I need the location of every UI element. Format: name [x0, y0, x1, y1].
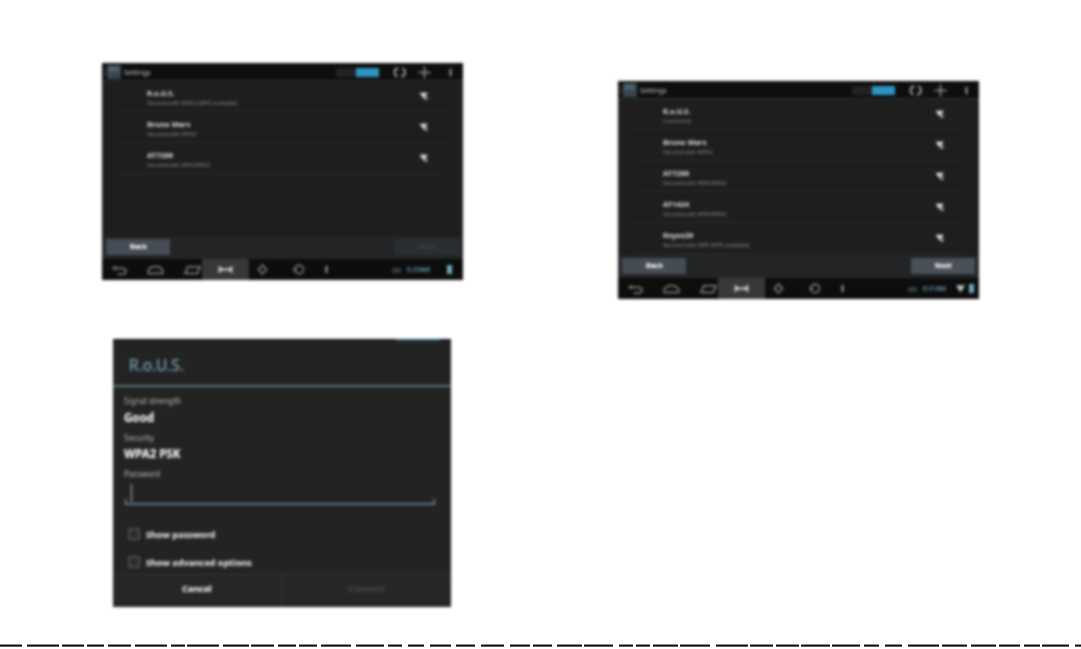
button[interactable]: Wi-Fi on/off — [336, 68, 379, 77]
button[interactable]: R.o.U.S. — [618, 99, 979, 130]
staticText: R.o.U.S. — [663, 106, 691, 116]
button[interactable]: Back — [111, 261, 128, 278]
button[interactable]: AT1424 — [618, 192, 979, 223]
button[interactable]: Back — [106, 239, 170, 255]
button[interactable]: More — [838, 282, 847, 295]
staticText: Back — [130, 242, 147, 252]
staticText: Settings — [124, 68, 151, 78]
staticText: Secured with WPA2 (WPS available) — [147, 99, 238, 106]
button[interactable]: Screenshot — [718, 278, 765, 299]
staticText: Show advanced options — [146, 556, 252, 568]
staticText: Back — [646, 261, 663, 271]
button[interactable]: Add network — [417, 65, 432, 80]
button[interactable]: Screenshot — [202, 259, 249, 280]
staticText: Secured with WPA2 — [147, 130, 197, 137]
button[interactable]: More options — [962, 84, 971, 97]
button[interactable]: Show advanced options — [113, 551, 451, 573]
button[interactable]: AT7286 — [102, 143, 463, 174]
button[interactable]: More options — [446, 66, 455, 79]
button[interactable]: Volume — [290, 261, 307, 278]
button[interactable]: Wi-Fi on/off — [852, 86, 895, 95]
staticText: Bruno Mars — [147, 119, 191, 129]
button[interactable]: Volume — [806, 280, 823, 297]
button[interactable]: Cancel — [113, 575, 281, 607]
button[interactable]: More — [322, 263, 331, 276]
button[interactable]: Brightness — [770, 280, 787, 297]
staticText: Password — [124, 468, 161, 479]
button[interactable]: Show password — [113, 523, 451, 545]
button[interactable]: Next — [911, 258, 975, 274]
button[interactable]: Bruno Mars — [102, 112, 463, 143]
button[interactable]: Scan — [909, 84, 922, 97]
staticText: Secured with WPA/WPA2 — [663, 210, 727, 217]
button[interactable]: Home — [663, 280, 680, 297]
staticText: Secured with WPA2 — [663, 148, 713, 155]
button[interactable]: R.o.U.S. — [102, 81, 463, 112]
staticText: 6:25AM — [407, 265, 430, 274]
staticText: Next — [935, 261, 952, 271]
staticText: Security — [124, 432, 155, 443]
staticText: Show password — [146, 528, 216, 540]
button[interactable]: Reyes26 — [618, 223, 979, 254]
button[interactable]: Home — [147, 261, 164, 278]
staticText: AT1424 — [663, 199, 690, 209]
staticText: Signal strength — [124, 395, 182, 406]
staticText: AT7286 — [663, 168, 690, 178]
staticText: R.o.U.S. — [147, 88, 175, 98]
button[interactable]: Connect — [282, 575, 451, 607]
button[interactable]: Add network — [933, 83, 948, 98]
staticText: Bruno Mars — [663, 137, 707, 147]
staticText: Cancel — [182, 582, 212, 594]
staticText: Reyes26 — [663, 230, 694, 240]
button[interactable]: Back — [622, 258, 686, 274]
staticText: Connected — [663, 117, 691, 124]
button[interactable]: Recent apps — [184, 261, 201, 278]
staticText: Settings — [640, 86, 667, 96]
staticText: 6:31AM — [923, 284, 946, 293]
staticText: Secured with WPA/WPA2 — [147, 161, 211, 168]
staticText: AT7286 — [147, 150, 174, 160]
button[interactable]: Recent apps — [700, 280, 717, 297]
staticText: Secured with WEP (WPS available) — [663, 241, 750, 248]
button[interactable]: AT7286 — [618, 161, 979, 192]
button[interactable]: Bruno Mars — [618, 130, 979, 161]
staticText: Connect — [348, 582, 386, 594]
staticText: Secured with WPA/WPA2 — [663, 179, 727, 186]
staticText: R.o.U.S. — [129, 354, 184, 375]
staticText: Good — [124, 410, 154, 426]
button[interactable]: Brightness — [254, 261, 271, 278]
button[interactable]: Back — [627, 280, 644, 297]
staticText: WPA2 PSK — [124, 446, 181, 462]
button[interactable]: Scan — [393, 66, 406, 79]
